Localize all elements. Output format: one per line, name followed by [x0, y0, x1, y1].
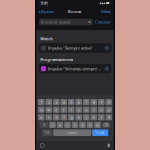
button[interactable]: f [60, 114, 67, 120]
staticText: s [48, 115, 50, 120]
button[interactable]: Impulso "Siempre activo" [36, 43, 114, 53]
staticText: r [63, 107, 65, 112]
button[interactable]: espacio [53, 129, 91, 136]
staticText: 4 [63, 99, 65, 105]
button[interactable]: u [83, 107, 90, 113]
staticText: u [85, 107, 87, 112]
staticText: y [78, 107, 80, 112]
button[interactable]: Emoji [40, 143, 44, 147]
button[interactable]: 1 [38, 99, 45, 105]
button[interactable]: Editar [87, 9, 111, 14]
button[interactable]: p [105, 107, 112, 113]
staticText: 0 [108, 99, 110, 105]
button[interactable]: w [45, 107, 52, 113]
staticText: ⇧ [42, 123, 45, 127]
button[interactable]: b [79, 122, 86, 128]
staticText: espacio [67, 131, 77, 134]
staticText: f [63, 115, 64, 120]
button[interactable]: 9 [98, 99, 105, 105]
staticText: a [40, 115, 42, 120]
staticText: 9:41 [41, 0, 48, 6]
staticText: h [78, 115, 80, 120]
button[interactable]: ⌫ [102, 122, 110, 128]
button[interactable]: Cancelar [95, 19, 111, 25]
staticText: 123 [44, 131, 50, 134]
staticText: ‹ [39, 7, 41, 16]
button[interactable]: g [68, 114, 75, 120]
button[interactable]: Dictar [108, 143, 110, 147]
staticText: ▪▪▪ [99, 1, 105, 4]
staticText: 9 [100, 99, 102, 105]
staticText: Editar [101, 9, 111, 14]
button[interactable]: i [90, 107, 97, 113]
staticText: t [71, 107, 72, 112]
staticText: Impulso "Siempre activo" [48, 45, 93, 51]
staticText: 5 [70, 99, 72, 105]
staticText: v [74, 122, 76, 127]
staticText: w [47, 107, 50, 112]
button[interactable]: n [87, 122, 93, 128]
button[interactable]: 4 [60, 99, 67, 105]
staticText: e [55, 107, 57, 112]
button[interactable]: ⇧ [40, 122, 48, 128]
button[interactable]: 5 [68, 99, 75, 105]
button[interactable]: 0 [105, 99, 112, 105]
staticText: 7 [85, 99, 87, 105]
staticText: Ajustes [41, 9, 54, 14]
staticText: ñ [108, 115, 110, 120]
button[interactable]: c [64, 122, 71, 128]
staticText: q [40, 107, 42, 112]
button[interactable]: buscar [92, 129, 108, 136]
button[interactable]: a [38, 114, 45, 120]
staticText: g [70, 115, 72, 120]
button[interactable]: y [75, 107, 82, 113]
button[interactable]: 7 [83, 99, 90, 105]
staticText: n [89, 122, 91, 127]
button[interactable]: r [60, 107, 67, 113]
button[interactable]: e [53, 107, 60, 113]
staticText: x [59, 122, 61, 127]
staticText: b [81, 122, 83, 127]
staticText: 3 [55, 99, 57, 105]
button[interactable]: q [38, 107, 45, 113]
button[interactable]: t [68, 107, 75, 113]
button[interactable]: z [49, 122, 56, 128]
button[interactable]: j [83, 114, 90, 120]
button[interactable]: Impulso "Semanas siempre activo" [36, 64, 114, 73]
staticText: ⌫ [103, 123, 109, 127]
button[interactable]: 8 [90, 99, 97, 105]
button[interactable]: v [72, 122, 78, 128]
staticText: Programaciones [40, 57, 73, 62]
staticText: o [100, 107, 102, 112]
button[interactable]: d [53, 114, 60, 120]
staticText: Watch [40, 36, 53, 41]
button[interactable]: 3 [53, 99, 60, 105]
button[interactable]: x [57, 122, 63, 128]
staticText: Impulso "Semanas siempre activo" [48, 66, 100, 71]
staticText: p [108, 107, 110, 112]
staticText: Buscar [68, 9, 82, 14]
button[interactable]: l [98, 114, 105, 120]
button[interactable]: m [94, 122, 101, 128]
staticText: Cancelar [95, 19, 111, 25]
button[interactable]: 6 [75, 99, 82, 105]
staticText: k [93, 115, 95, 120]
staticText: c [66, 122, 68, 127]
button[interactable]: o [98, 107, 105, 113]
staticText: buscar [96, 131, 104, 134]
button[interactable]: k [90, 114, 97, 120]
staticText: 2 [48, 99, 50, 105]
staticText: 6 [78, 99, 80, 105]
button[interactable]: h [75, 114, 82, 120]
button[interactable]: ‹ [39, 7, 63, 16]
staticText: j [86, 115, 87, 120]
button[interactable]: 2 [45, 99, 52, 105]
staticText: z [51, 122, 53, 127]
staticText: 8 [93, 99, 95, 105]
button[interactable]: ñ [105, 114, 112, 120]
staticText: d [55, 115, 57, 120]
staticText: 1 [40, 99, 42, 105]
button[interactable]: s [45, 114, 52, 120]
staticText: Buscar ajustes [45, 19, 71, 25]
button[interactable]: 123 [42, 129, 52, 136]
